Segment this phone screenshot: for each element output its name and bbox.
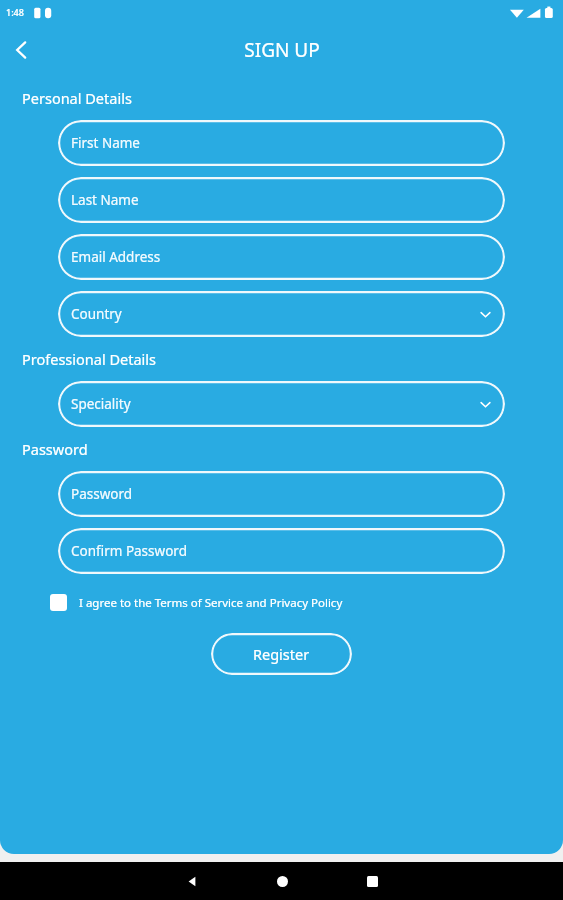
staticText: Personal Details bbox=[22, 88, 132, 108]
button[interactable]: Last Name bbox=[58, 177, 505, 223]
button[interactable]: Register bbox=[211, 633, 352, 675]
button[interactable]: Country bbox=[58, 291, 505, 337]
staticText: SIGN UP bbox=[244, 37, 320, 63]
staticText: First Name bbox=[71, 134, 140, 152]
button[interactable]: Password bbox=[58, 471, 505, 517]
staticText: Register bbox=[253, 644, 310, 664]
button[interactable]: Confirm Password bbox=[58, 528, 505, 574]
button[interactable]: First Name bbox=[58, 120, 505, 166]
button[interactable]: Speciality bbox=[58, 381, 505, 427]
button[interactable]: Back bbox=[175, 864, 209, 898]
staticText: Professional Details bbox=[22, 349, 156, 369]
button[interactable]: Email Address bbox=[58, 234, 505, 280]
staticText: Email Address bbox=[71, 248, 161, 266]
staticText: Password bbox=[71, 485, 133, 503]
staticText: Password bbox=[22, 439, 88, 459]
staticText: I agree to the Terms of Service and Priv… bbox=[79, 595, 343, 611]
button[interactable]: Home bbox=[265, 864, 299, 898]
staticText: Last Name bbox=[71, 191, 139, 209]
button[interactable]: Recent apps bbox=[355, 864, 389, 898]
button[interactable]: I agree to the Terms of Service and Priv… bbox=[50, 594, 343, 611]
staticText: Confirm Password bbox=[71, 542, 187, 560]
staticText: Country bbox=[71, 305, 122, 323]
button[interactable]: Back bbox=[0, 28, 44, 72]
staticText: 1:48 bbox=[6, 6, 24, 18]
staticText: Speciality bbox=[71, 395, 131, 413]
